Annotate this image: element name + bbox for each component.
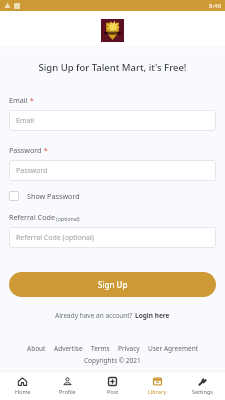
staticText: Profile [59,388,76,395]
staticText: 8:49 [209,2,221,10]
button[interactable]: Talent Mart logo [101,19,124,42]
button[interactable]: Terms [87,344,114,353]
button[interactable]: About [23,344,50,353]
staticText: Password [16,166,48,176]
button[interactable]: User Agreement [144,344,203,353]
staticText: Copyrights © 2021 [84,356,141,365]
button[interactable]: Sign Up [9,272,216,297]
staticText: Sign Up for Talent Mart, it's Free! [0,61,225,74]
staticText: Referral Code (optional) [16,233,94,243]
staticText: Referral Code [9,212,55,222]
staticText: Email [16,116,34,126]
button[interactable]: Library [135,371,180,400]
staticText: Settings [192,388,213,395]
button[interactable]: Privacy [114,344,144,353]
staticText: Sign Up [98,279,128,290]
staticText: Post [107,388,119,395]
button[interactable]: Post [90,371,135,400]
staticText: Show Password [27,191,80,201]
button[interactable]: Profile [45,371,90,400]
staticText: Library [148,388,167,395]
staticText: * [28,95,34,105]
button[interactable]: Login here [135,311,170,320]
button[interactable]: Password [9,160,216,181]
staticText: Already have an account? [55,311,135,320]
button[interactable]: Show Password [9,189,80,203]
button[interactable]: Email [9,110,216,131]
staticText: Home [15,388,31,395]
button[interactable]: Referral Code (optional) [9,227,216,248]
button[interactable]: Advertise [50,344,87,353]
button[interactable]: Settings [180,371,225,400]
staticText: Email [9,95,28,105]
staticText: (optional) [55,215,80,222]
staticText: * [42,145,48,155]
button[interactable]: Home [0,371,45,400]
staticText: Password [9,145,42,155]
